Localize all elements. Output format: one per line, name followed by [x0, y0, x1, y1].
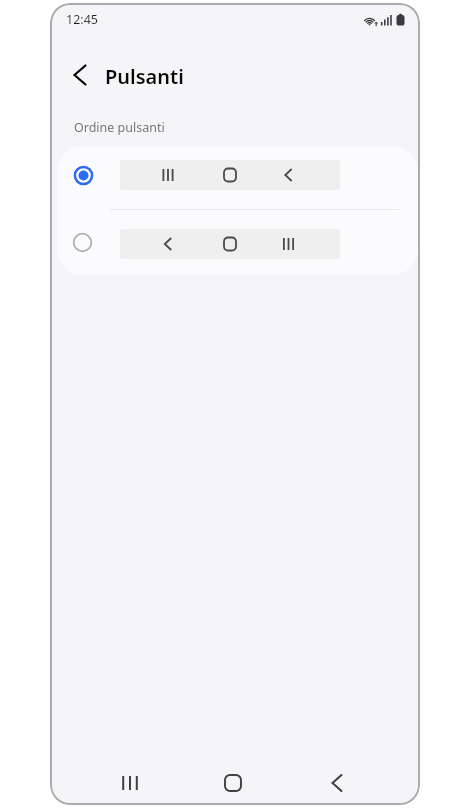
staticText: Pulsanti — [105, 63, 184, 90]
button[interactable] — [201, 760, 265, 805]
button[interactable] — [305, 760, 369, 805]
button[interactable] — [98, 760, 162, 805]
staticText: Ordine pulsanti — [74, 119, 165, 136]
staticText: 12:45 — [66, 11, 98, 28]
button[interactable] — [57, 146, 418, 210]
button[interactable] — [66, 61, 94, 89]
button[interactable] — [57, 210, 418, 274]
